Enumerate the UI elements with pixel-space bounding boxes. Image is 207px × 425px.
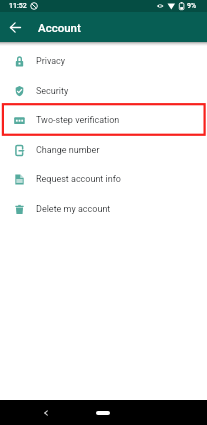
button[interactable]: Request account info	[0, 164, 207, 194]
button[interactable]: Two-step verification	[0, 105, 207, 135]
staticText: Account	[38, 21, 81, 34]
button[interactable]: Delete my account	[0, 194, 207, 224]
button[interactable]: Back	[5, 17, 26, 38]
staticText: 11:52	[9, 2, 27, 10]
staticText: Delete my account	[36, 204, 111, 215]
staticText: Security	[36, 86, 69, 97]
staticText: Two-step verification	[36, 115, 120, 126]
staticText: Change number	[36, 145, 100, 156]
staticText: Request account info	[36, 174, 121, 185]
button[interactable]: Security	[0, 76, 207, 106]
button[interactable]: Home	[96, 411, 110, 415]
button[interactable]: Change number	[0, 135, 207, 165]
button[interactable]: Back	[38, 405, 54, 421]
staticText: 9%	[187, 2, 197, 10]
staticText: Privacy	[36, 56, 66, 67]
button[interactable]: Privacy	[0, 46, 207, 76]
